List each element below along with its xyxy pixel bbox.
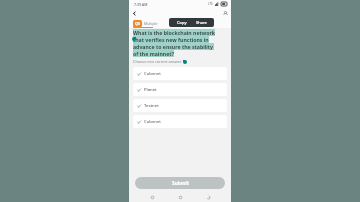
- staticText: Submit: [172, 180, 189, 187]
- staticText: Choose one correct answer: [133, 59, 182, 64]
- staticText: Cubenet: [144, 119, 161, 125]
- staticText: advance to ensure the stability: [133, 43, 214, 50]
- staticText: Copy: [177, 20, 187, 25]
- button[interactable]: Share: [193, 19, 210, 26]
- staticText: Cubenet: [144, 71, 161, 77]
- staticText: 7:39 AM: [134, 2, 148, 7]
- button[interactable]: Account: [220, 8, 231, 19]
- button[interactable]: Testnet: [133, 99, 227, 112]
- button[interactable]: Cubenet: [133, 115, 227, 128]
- staticText: What is the blockchain network: [133, 29, 215, 36]
- staticText: Q3: [135, 21, 140, 26]
- button[interactable]: Submit: [135, 177, 225, 189]
- button[interactable]: Back: [129, 8, 140, 19]
- button[interactable]: Cubenet: [133, 67, 227, 80]
- staticText: LTE: [208, 2, 213, 6]
- staticText: that verifies new functions in: [133, 36, 209, 43]
- staticText: Testnet: [144, 103, 159, 109]
- staticText: Share: [196, 20, 207, 25]
- button[interactable]: Recents: [147, 192, 157, 202]
- button[interactable]: Back: [203, 192, 213, 202]
- staticText: of the mainnet?: [133, 50, 174, 57]
- button[interactable]: Home: [175, 192, 185, 202]
- button[interactable]: Copy: [174, 19, 190, 26]
- staticText: Planet: [144, 87, 157, 93]
- staticText: Multiple: [144, 21, 158, 26]
- button[interactable]: Planet: [133, 83, 227, 96]
